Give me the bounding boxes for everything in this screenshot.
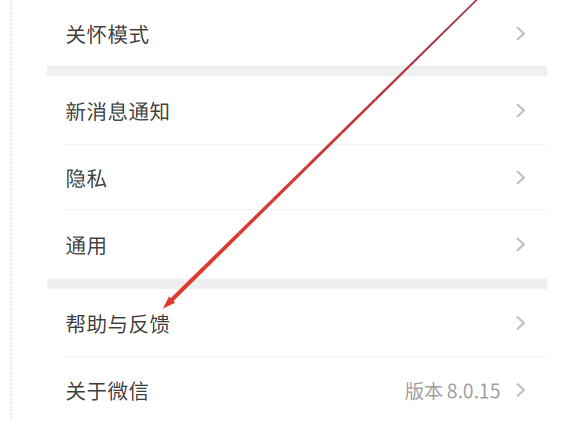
button[interactable]: 关怀模式 (47, 0, 547, 65)
button[interactable]: 帮助与反馈 (47, 289, 547, 356)
staticText: 隐私 (65, 163, 107, 192)
staticText: 关怀模式 (65, 19, 149, 48)
button[interactable]: 通用 (47, 210, 547, 278)
button[interactable]: 隐私 (47, 145, 547, 209)
button[interactable]: 新消息通知 (47, 76, 547, 144)
button[interactable]: 关于微信 (47, 357, 547, 421)
staticText: 关于微信 (65, 375, 149, 405)
staticText: 版本 8.0.15 (405, 376, 501, 404)
staticText: 新消息通知 (65, 96, 170, 125)
staticText: 帮助与反馈 (65, 308, 170, 338)
staticText: 通用 (65, 230, 107, 259)
